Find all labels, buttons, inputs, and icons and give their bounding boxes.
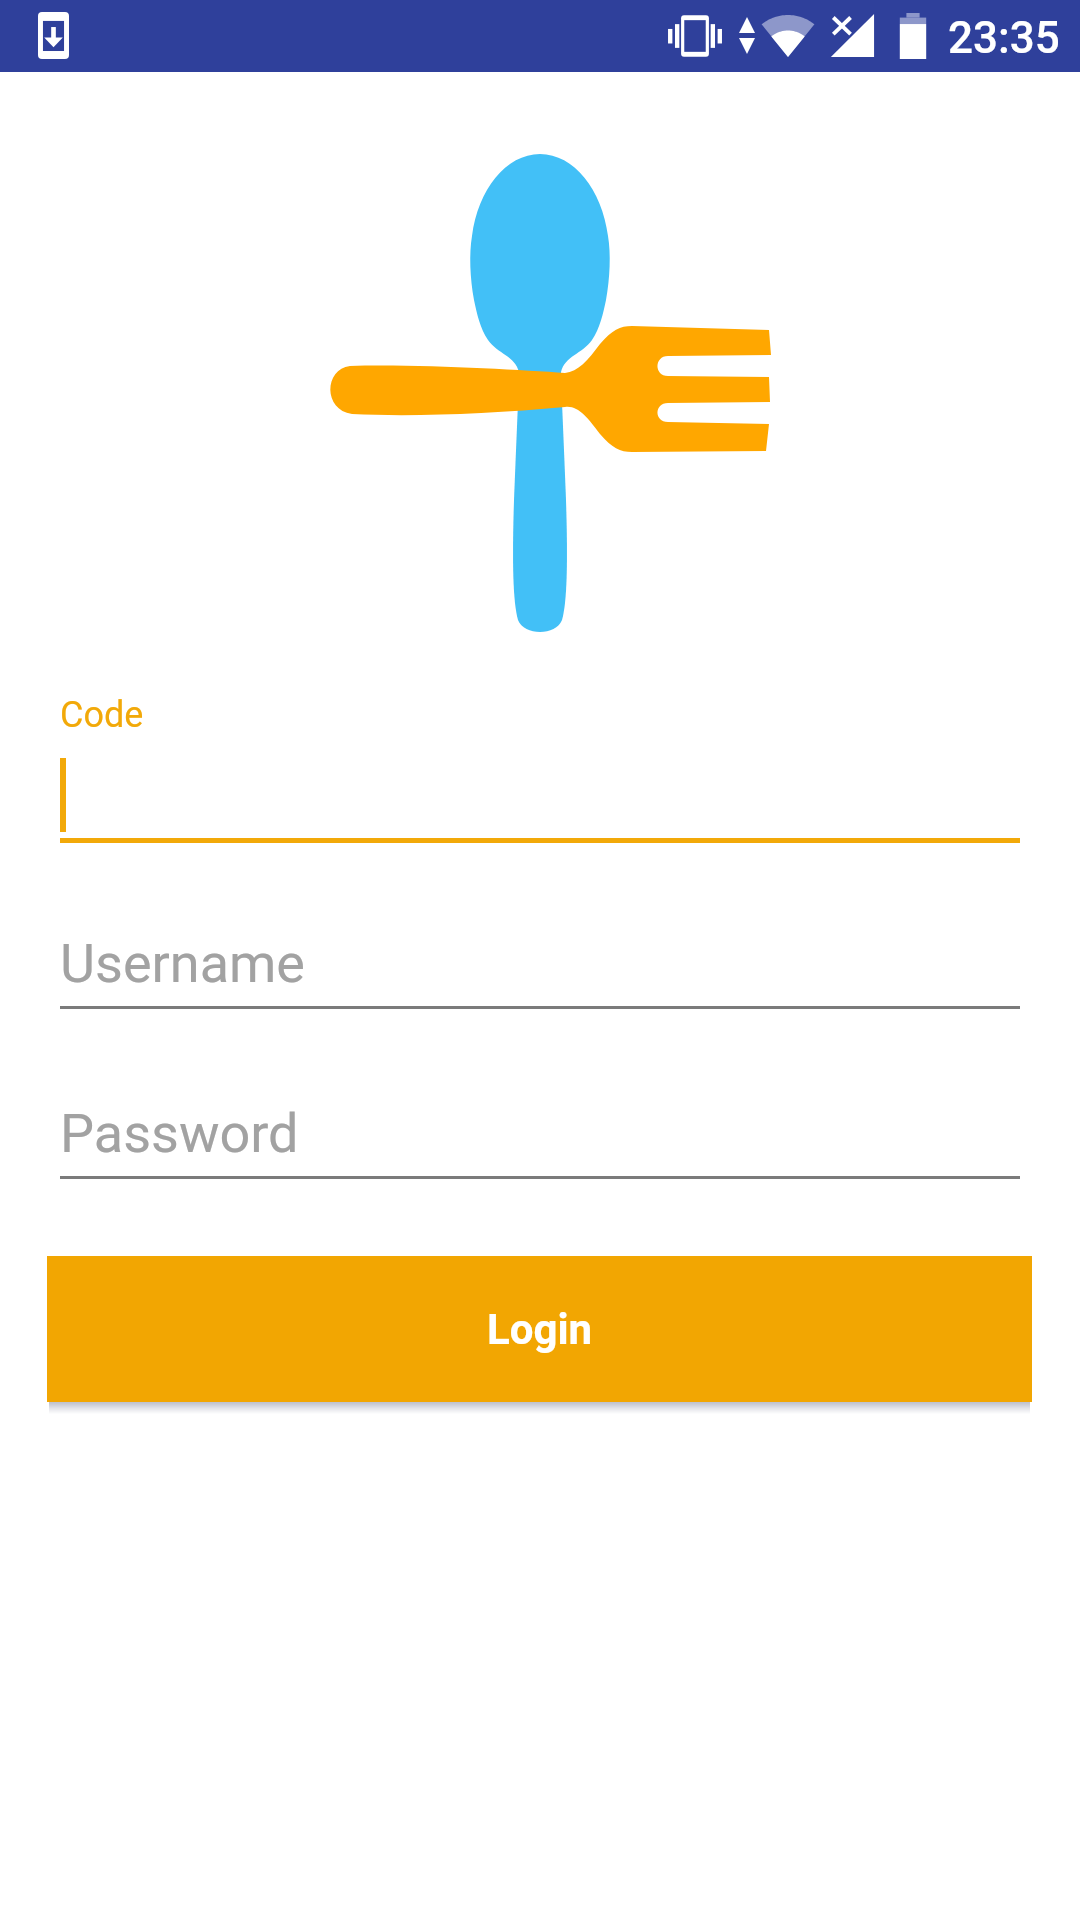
staticText: 23:35 <box>948 12 1060 64</box>
staticText: Code <box>60 694 144 736</box>
button[interactable]: Login <box>47 1256 1032 1402</box>
other: App install <box>38 12 69 59</box>
staticText: Password <box>60 1102 299 1165</box>
button[interactable]: Code <box>60 690 1020 843</box>
staticText: Username <box>60 932 306 995</box>
button[interactable]: Password <box>60 1102 1020 1179</box>
button[interactable]: Username <box>60 932 1020 1009</box>
staticText: Login <box>487 1305 593 1354</box>
